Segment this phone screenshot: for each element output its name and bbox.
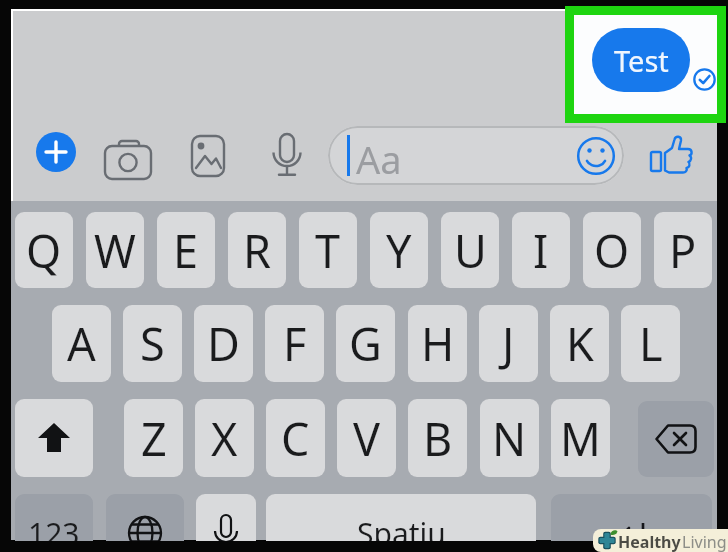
- button[interactable]: Z: [124, 399, 183, 477]
- button[interactable]: Y: [370, 212, 428, 288]
- staticText: F: [283, 313, 307, 374]
- button[interactable]: [103, 138, 155, 182]
- staticText: 123: [28, 513, 80, 552]
- button[interactable]: [191, 135, 225, 177]
- staticText: H: [421, 313, 455, 374]
- staticText: Q: [26, 220, 62, 281]
- button[interactable]: Test: [592, 28, 690, 92]
- button[interactable]: E: [157, 212, 215, 288]
- button[interactable]: P: [654, 212, 712, 288]
- staticText: W: [94, 220, 136, 281]
- button[interactable]: B: [408, 399, 467, 477]
- button[interactable]: [649, 134, 695, 174]
- staticText: Living: [682, 531, 727, 552]
- staticText: A: [67, 313, 96, 374]
- button[interactable]: W: [86, 212, 144, 288]
- button[interactable]: S: [123, 305, 182, 382]
- staticText: O: [594, 220, 630, 281]
- button[interactable]: [638, 401, 714, 477]
- button[interactable]: G: [336, 305, 395, 382]
- button[interactable]: J: [479, 305, 538, 382]
- button[interactable]: K: [550, 305, 609, 382]
- button[interactable]: [15, 399, 93, 477]
- staticText: I: [533, 220, 549, 281]
- button[interactable]: 123: [15, 494, 93, 552]
- button[interactable]: [328, 126, 624, 185]
- button[interactable]: Q: [15, 212, 73, 288]
- staticText: V: [353, 408, 381, 469]
- button[interactable]: [106, 494, 184, 552]
- staticText: T: [315, 220, 341, 281]
- button[interactable]: L: [621, 305, 680, 382]
- button[interactable]: H: [408, 305, 467, 382]
- staticText: Z: [141, 408, 167, 469]
- staticText: Spatiu: [357, 513, 446, 552]
- staticText: R: [243, 220, 271, 281]
- button[interactable]: [196, 494, 256, 552]
- button[interactable]: R: [228, 212, 286, 288]
- button[interactable]: M: [551, 399, 610, 477]
- staticText: Healthy: [618, 531, 681, 552]
- staticText: D: [207, 313, 240, 374]
- staticText: Y: [386, 220, 412, 281]
- staticText: G: [349, 313, 382, 374]
- staticText: J: [502, 313, 515, 374]
- button[interactable]: A: [52, 305, 111, 382]
- button[interactable]: I: [512, 212, 570, 288]
- staticText: K: [566, 313, 594, 374]
- staticText: P: [669, 220, 697, 281]
- button[interactable]: [551, 494, 712, 552]
- button[interactable]: V: [337, 399, 396, 477]
- staticText: Test: [614, 41, 669, 80]
- button[interactable]: [36, 132, 76, 172]
- button[interactable]: N: [480, 399, 539, 477]
- button[interactable]: F: [265, 305, 324, 382]
- button[interactable]: Spatiu: [266, 494, 536, 552]
- button[interactable]: D: [194, 305, 253, 382]
- button[interactable]: O: [583, 212, 641, 288]
- button[interactable]: [577, 137, 615, 175]
- button[interactable]: [271, 132, 303, 180]
- staticText: N: [492, 408, 527, 469]
- staticText: X: [211, 408, 238, 469]
- staticText: M: [560, 408, 601, 469]
- staticText: E: [173, 220, 199, 281]
- button[interactable]: U: [441, 212, 499, 288]
- staticText: L: [639, 313, 663, 374]
- staticText: U: [454, 220, 487, 281]
- staticText: S: [140, 313, 165, 374]
- staticText: Aa: [356, 133, 402, 185]
- button[interactable]: T: [299, 212, 357, 288]
- staticText: C: [281, 408, 310, 469]
- button[interactable]: X: [195, 399, 254, 477]
- button[interactable]: C: [266, 399, 325, 477]
- staticText: B: [423, 408, 453, 469]
